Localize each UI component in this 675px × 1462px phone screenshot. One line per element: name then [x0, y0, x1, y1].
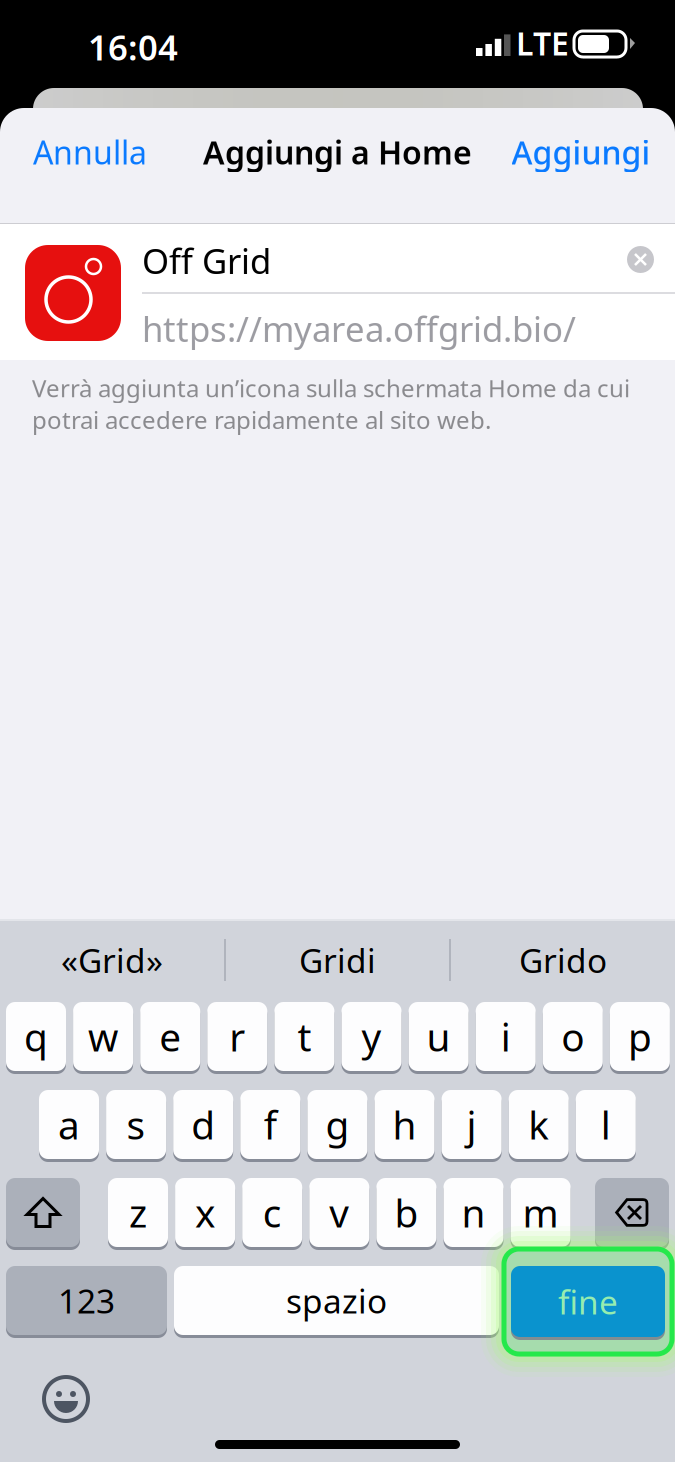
button[interactable]: Emoji: [40, 1373, 92, 1425]
button[interactable]: c: [242, 1178, 302, 1247]
button[interactable]: d: [173, 1090, 233, 1159]
button[interactable]: j: [442, 1090, 502, 1159]
staticText: Verrà aggiunta un’icona sulla schermata …: [32, 372, 630, 436]
button[interactable]: s: [106, 1090, 166, 1159]
button[interactable]: b: [376, 1178, 436, 1247]
staticText: s: [127, 1099, 146, 1150]
button[interactable]: p: [610, 1002, 670, 1071]
staticText: o: [561, 1011, 584, 1062]
button[interactable]: t: [274, 1002, 334, 1071]
staticText: l: [601, 1099, 611, 1150]
staticText: LTE: [516, 22, 569, 64]
button[interactable]: i: [476, 1002, 536, 1071]
button[interactable]: q: [6, 1002, 66, 1071]
staticText: r: [229, 1011, 245, 1062]
button[interactable]: k: [509, 1090, 569, 1159]
staticText: w: [88, 1011, 118, 1062]
button[interactable]: Aggiungi: [500, 121, 662, 183]
staticText: d: [191, 1099, 215, 1150]
staticText: Aggiungi a Home: [203, 131, 472, 173]
button[interactable]: m: [511, 1178, 571, 1247]
button[interactable]: Cancella testo: [624, 243, 657, 276]
button[interactable]: Grido: [451, 933, 675, 987]
staticText: y: [361, 1011, 381, 1062]
button[interactable]: spazio: [174, 1266, 499, 1335]
staticText: 123: [58, 1278, 115, 1323]
button[interactable]: o: [543, 1002, 603, 1071]
button[interactable]: w: [73, 1002, 133, 1071]
staticText: x: [195, 1187, 215, 1238]
button[interactable]: e: [140, 1002, 200, 1071]
staticText: z: [129, 1187, 147, 1238]
button[interactable]: fine: [511, 1266, 665, 1337]
button[interactable]: Annulla: [10, 121, 170, 183]
button[interactable]: f: [240, 1090, 300, 1159]
staticText: Off Grid: [142, 237, 271, 283]
staticText: Annulla: [33, 131, 147, 173]
button[interactable]: 123: [6, 1266, 167, 1335]
staticText: b: [394, 1187, 418, 1238]
staticText: spazio: [286, 1278, 387, 1323]
button[interactable]: u: [409, 1002, 469, 1071]
staticText: «Grid»: [61, 938, 163, 982]
button[interactable]: v: [309, 1178, 369, 1247]
staticText: v: [329, 1187, 349, 1238]
button[interactable]: a: [39, 1090, 99, 1159]
staticText: j: [467, 1099, 477, 1150]
staticText: q: [24, 1011, 48, 1062]
staticText: h: [392, 1099, 416, 1150]
staticText: fine: [558, 1279, 618, 1324]
staticText: c: [263, 1187, 282, 1238]
staticText: u: [427, 1011, 451, 1062]
staticText: f: [264, 1099, 277, 1150]
button[interactable]: l: [576, 1090, 636, 1159]
staticText: t: [297, 1011, 311, 1062]
staticText: k: [528, 1099, 549, 1150]
staticText: i: [501, 1011, 511, 1062]
staticText: a: [58, 1099, 80, 1150]
staticText: Gridi: [299, 938, 376, 982]
button[interactable]: Gridi: [226, 933, 449, 987]
button[interactable]: Elimina: [595, 1178, 669, 1247]
button[interactable]: r: [207, 1002, 267, 1071]
staticText: Grido: [519, 938, 607, 982]
button[interactable]: z: [108, 1178, 168, 1247]
button[interactable]: Maiuscole: [6, 1178, 80, 1247]
button[interactable]: n: [443, 1178, 503, 1247]
button[interactable]: h: [374, 1090, 434, 1159]
staticText: p: [628, 1011, 652, 1062]
button[interactable]: «Grid»: [0, 933, 224, 987]
staticText: m: [523, 1187, 559, 1238]
button[interactable]: g: [307, 1090, 367, 1159]
button[interactable]: y: [341, 1002, 401, 1071]
button[interactable]: x: [175, 1178, 235, 1247]
staticText: e: [159, 1011, 181, 1062]
staticText: n: [461, 1187, 485, 1238]
staticText: Aggiungi: [511, 131, 650, 173]
staticText: 16:04: [88, 24, 178, 70]
staticText: g: [325, 1099, 349, 1150]
staticText: https://myarea.offgrid.bio/: [142, 305, 576, 351]
